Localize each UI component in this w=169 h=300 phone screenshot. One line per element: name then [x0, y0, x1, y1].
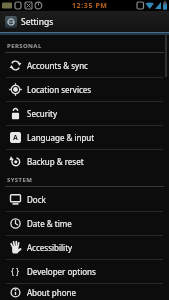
button[interactable]: A	[0, 126, 169, 149]
staticText: Language & input	[27, 132, 95, 143]
staticText: About phone	[27, 287, 76, 298]
staticText: { }	[11, 266, 20, 277]
staticText: Accounts & sync	[27, 60, 88, 71]
button[interactable]: Accessibility	[0, 236, 169, 259]
staticText: A	[13, 133, 18, 143]
button[interactable]: Security	[0, 102, 169, 125]
button[interactable]: Dock	[0, 187, 169, 211]
button[interactable]: Accounts & sync	[0, 53, 169, 77]
staticText: Accessibility	[27, 242, 73, 253]
button[interactable]: Settings	[0, 11, 169, 32]
staticText: Date & time	[27, 218, 72, 229]
button[interactable]: Date & time	[0, 212, 169, 235]
staticText: Developer options	[27, 266, 96, 277]
button[interactable]: Backup & reset	[0, 150, 169, 173]
button[interactable]: Location services	[0, 78, 169, 101]
staticText: Security	[27, 108, 58, 119]
button[interactable]: { }	[0, 260, 169, 283]
button[interactable]: About phone	[0, 284, 169, 300]
staticText: 12:35 PM	[72, 1, 108, 11]
staticText: Settings	[21, 16, 54, 28]
staticText: Dock	[27, 194, 46, 205]
staticText: Location services	[27, 84, 92, 95]
staticText: Backup & reset	[27, 156, 84, 167]
staticText: SYSTEM	[7, 176, 33, 184]
staticText: PERSONAL	[7, 42, 42, 50]
